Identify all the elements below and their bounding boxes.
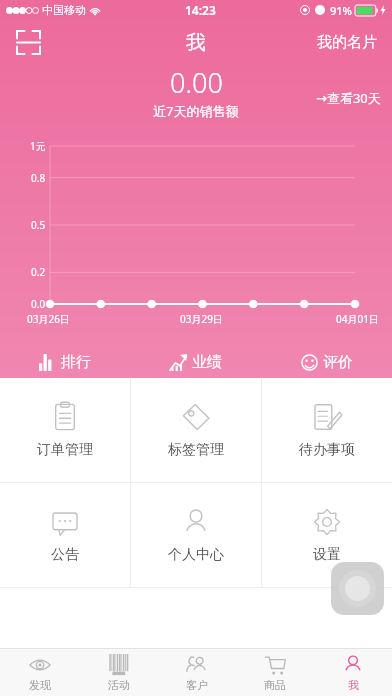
staticText: 0.00 [170, 64, 223, 101]
staticText: 14:23 [185, 2, 216, 18]
staticText: 设置 [313, 546, 341, 564]
staticText: 0.2 [31, 265, 46, 279]
button[interactable]: 活动 [79, 649, 158, 696]
staticText: →查看30天 [316, 89, 381, 107]
button[interactable]: 客户 [158, 649, 236, 696]
staticText: 订单管理 [37, 441, 93, 459]
staticText: 活动 [108, 678, 130, 692]
staticText: 0.5 [31, 218, 46, 232]
staticText: 0.0 [31, 297, 46, 311]
staticText: 03月26日 [27, 312, 70, 326]
staticText: 91% [330, 3, 352, 18]
staticText: 发现 [29, 678, 51, 692]
button[interactable]: 排行 [0, 346, 130, 378]
button[interactable]: 待办事项 [262, 378, 392, 482]
staticText: 我的名片 [317, 33, 377, 52]
staticText: 中国移动 [42, 3, 86, 17]
staticText: 待办事项 [299, 441, 355, 459]
button[interactable]: Assistive touch [331, 562, 384, 615]
button[interactable]: 订单管理 [0, 378, 130, 482]
button[interactable]: 设置 [262, 483, 392, 587]
staticText: 我 [348, 678, 359, 692]
staticText: 个人中心 [168, 546, 224, 564]
button[interactable]: 商品 [236, 649, 314, 696]
staticText: 公告 [51, 546, 79, 564]
staticText: 排行 [61, 353, 91, 372]
button[interactable]: 业绩 [130, 346, 261, 378]
button[interactable]: 标签管理 [131, 378, 261, 482]
staticText: 0.8 [31, 171, 46, 185]
button[interactable]: 个人中心 [131, 483, 261, 587]
button[interactable]: 发现 [0, 649, 79, 696]
button[interactable]: 评价 [261, 346, 392, 378]
staticText: 1元 [30, 139, 46, 153]
button[interactable]: →查看30天 [313, 84, 384, 112]
button[interactable]: 公告 [0, 483, 130, 587]
button[interactable]: 我的名片 [314, 25, 380, 60]
button[interactable]: Scan [6, 20, 50, 64]
staticText: 04月01日 [336, 312, 379, 326]
staticText: 03月29日 [180, 312, 223, 326]
staticText: 客户 [186, 678, 208, 692]
staticText: 标签管理 [168, 441, 224, 459]
staticText: 评价 [323, 353, 353, 372]
staticText: 业绩 [192, 353, 222, 372]
staticText: 我 [186, 30, 206, 55]
staticText: 近7天的销售额 [153, 102, 239, 120]
button[interactable]: 我 [314, 649, 392, 696]
staticText: 商品 [264, 678, 286, 692]
